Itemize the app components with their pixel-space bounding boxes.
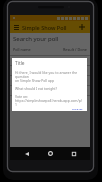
staticText: Result / Done <box>63 47 87 52</box>
button[interactable]: Add poll <box>77 22 87 32</box>
button[interactable]: Pasta <box>10 76 90 86</box>
staticText: Title <box>15 60 25 67</box>
staticText: Hi there, I would like you to answer the… <box>15 70 84 83</box>
staticText: Nothing from sharing <box>13 88 56 94</box>
staticText: Vote on: https://simpleshowpoll.herokuap… <box>15 94 84 107</box>
staticText: Hamburger <box>13 68 36 74</box>
staticText: Pasta <box>13 78 24 84</box>
staticText: 100% (1 vote) <box>58 68 82 73</box>
staticText: Simple Show Poll <box>22 24 67 31</box>
button[interactable]: Pizza <box>10 56 90 66</box>
staticText: What should I eat tonight? <box>15 86 58 91</box>
button[interactable]: Navigate up <box>12 23 21 32</box>
button[interactable]: Back <box>20 147 33 160</box>
staticText: Search your poll <box>13 35 59 43</box>
button[interactable]: Recents <box>67 147 80 160</box>
button[interactable]: Home <box>44 147 57 160</box>
button[interactable]: Nothing from sharing <box>10 86 90 96</box>
staticText: Pizza <box>13 58 23 64</box>
staticText: Poll name <box>13 47 31 52</box>
button[interactable]: Hamburger <box>10 66 90 76</box>
staticText: SEND <box>72 108 83 110</box>
button[interactable]: SEND <box>71 107 84 111</box>
